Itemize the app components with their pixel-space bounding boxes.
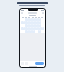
button[interactable] (25, 24, 29, 27)
button[interactable]: Menu (20, 11, 45, 14)
button[interactable] (32, 21, 35, 24)
button[interactable] (21, 21, 25, 24)
button[interactable] (41, 27, 44, 30)
button[interactable] (32, 24, 35, 27)
button[interactable] (29, 18, 32, 21)
button[interactable] (29, 24, 32, 27)
button[interactable] (38, 24, 41, 27)
button[interactable] (21, 27, 25, 30)
button[interactable] (32, 30, 35, 33)
button[interactable] (35, 21, 38, 24)
button[interactable] (35, 18, 38, 21)
button[interactable] (35, 27, 38, 30)
button[interactable] (32, 27, 35, 30)
button[interactable] (29, 21, 32, 24)
button[interactable] (25, 21, 29, 24)
button[interactable] (38, 21, 41, 24)
button[interactable] (32, 18, 35, 21)
button[interactable] (25, 18, 29, 21)
button[interactable] (29, 30, 32, 33)
button[interactable] (38, 27, 41, 30)
button[interactable] (38, 30, 41, 33)
button[interactable] (38, 18, 41, 21)
button[interactable] (35, 24, 38, 27)
button[interactable] (35, 62, 44, 65)
button[interactable] (25, 30, 29, 33)
button[interactable] (25, 27, 29, 30)
button[interactable] (29, 27, 32, 30)
